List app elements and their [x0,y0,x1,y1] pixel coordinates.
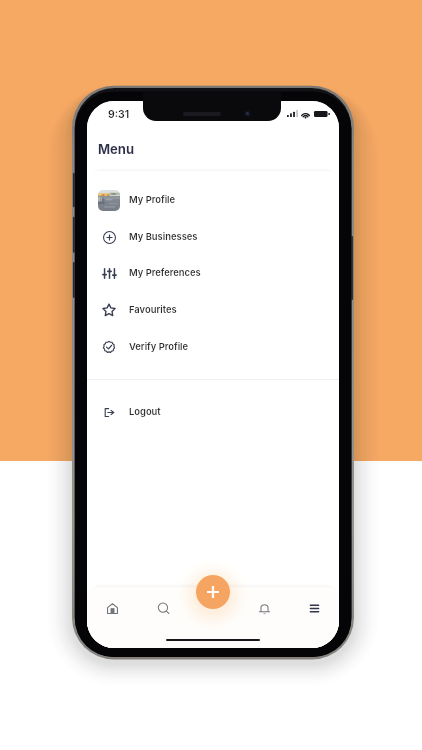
staticText: Favourites [129,304,177,315]
button[interactable]: Notifications [239,578,289,639]
staticText: Logout [129,406,161,417]
button[interactable]: Logout [87,393,339,430]
button[interactable]: Verify Profile [87,328,339,365]
staticText: My Preferences [129,267,201,278]
staticText: Menu [98,141,135,157]
staticText: 9:31 [108,108,130,121]
button[interactable]: Home [87,578,138,639]
staticText: Verify Profile [129,341,189,352]
button[interactable]: My Preferences [87,254,339,291]
button[interactable]: Search [138,578,189,639]
button[interactable]: My Businesses [87,218,339,255]
staticText: My Profile [129,194,176,205]
staticText: My Businesses [129,231,198,242]
button[interactable]: Favourites [87,291,339,328]
button[interactable]: Add [196,575,230,609]
button[interactable]: Menu [289,578,339,639]
button[interactable]: My Profile [87,181,339,218]
